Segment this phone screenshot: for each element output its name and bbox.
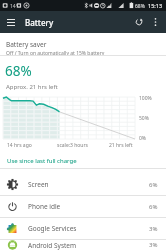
button[interactable]: Phone idle xyxy=(0,196,166,217)
staticText: 100% xyxy=(139,95,152,102)
staticText: 14° xyxy=(10,3,18,10)
staticText: Use since last full charge xyxy=(7,157,77,165)
staticText: 3% xyxy=(149,225,158,233)
staticText: Approx. 21 hrs left xyxy=(6,83,58,91)
button[interactable]: Use since last full charge xyxy=(0,157,166,168)
button[interactable]: Screen xyxy=(0,174,166,195)
staticText: 68% xyxy=(5,62,32,80)
staticText: Phone idle xyxy=(28,202,61,211)
button[interactable]: Google Services xyxy=(0,218,166,239)
staticText: Off / Turn on automatically at 15% batte… xyxy=(6,50,105,55)
staticText: 3% xyxy=(149,241,158,249)
staticText: 0% xyxy=(139,135,147,142)
staticText: 6% xyxy=(149,181,158,189)
staticText: 6% xyxy=(149,203,158,211)
staticText: Screen xyxy=(28,180,49,189)
button[interactable]: Android System xyxy=(0,240,166,250)
staticText: 15:13 xyxy=(148,2,163,9)
button[interactable]: Navigation menu xyxy=(0,11,22,33)
staticText: 21 hrs left xyxy=(109,142,133,149)
button[interactable]: Battery saver xyxy=(0,33,166,55)
staticText: Android System xyxy=(28,241,77,250)
staticText: 68% xyxy=(135,3,145,10)
staticText: 50% xyxy=(139,115,149,122)
button[interactable]: More options xyxy=(148,11,162,33)
staticText: Battery xyxy=(25,17,54,28)
staticText: 14 hrs ago xyxy=(7,142,32,149)
staticText: Google Services xyxy=(28,224,77,233)
staticText: Battery saver xyxy=(6,40,47,49)
button[interactable]: Refresh xyxy=(130,11,148,33)
staticText: scale:3 hours xyxy=(57,142,88,149)
